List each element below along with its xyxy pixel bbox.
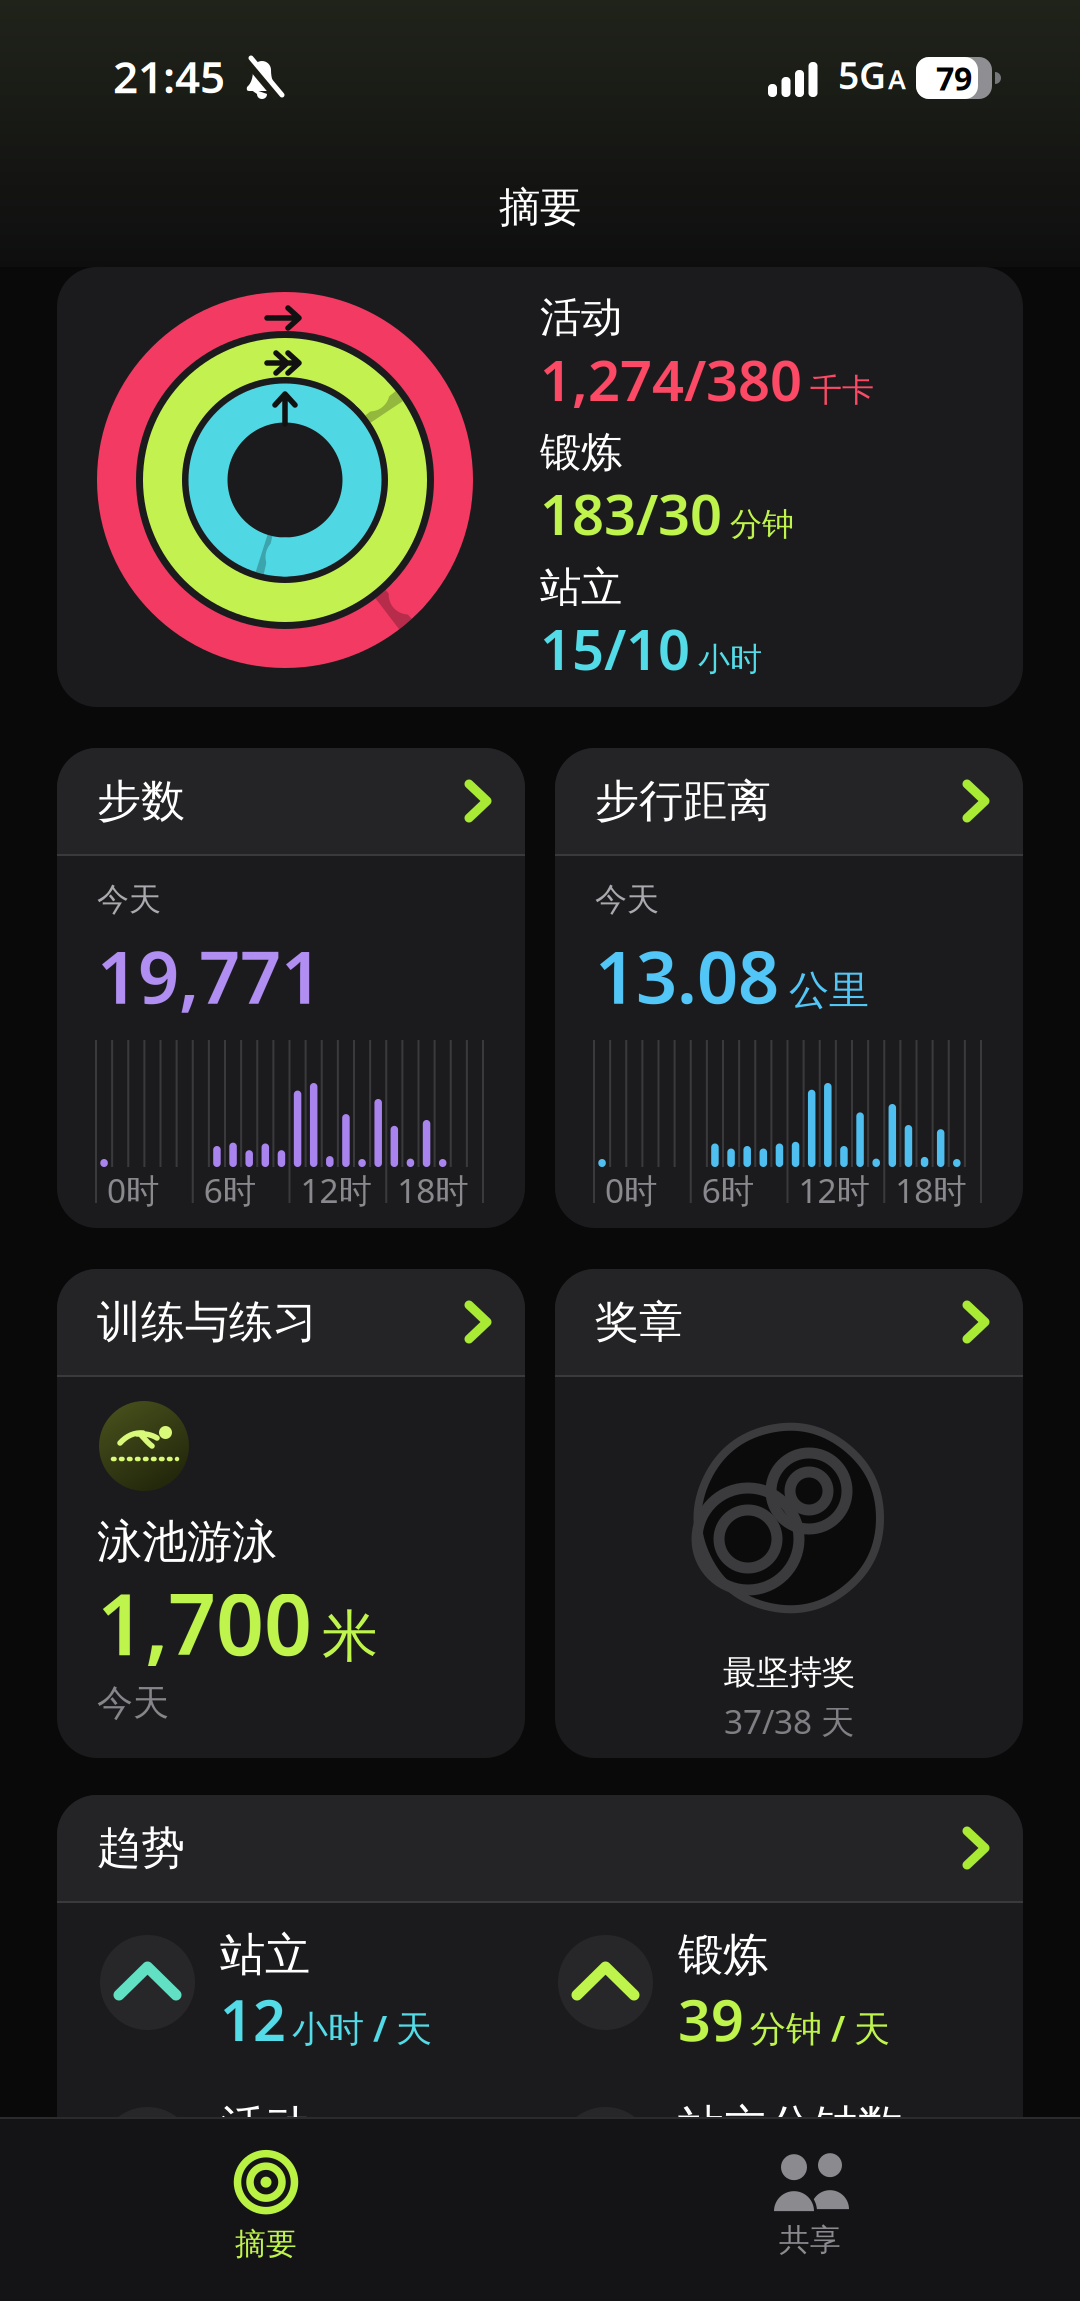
- staticText: 0时: [107, 1168, 159, 1212]
- staticText: 站立分钟数: [678, 2099, 903, 2155]
- staticText: 今天: [595, 880, 659, 919]
- button[interactable]: 趋势: [57, 1795, 1023, 2301]
- staticText: 公里: [789, 966, 869, 1015]
- staticText: 今天: [97, 1681, 169, 1725]
- button[interactable]: 奖章: [555, 1269, 1023, 1758]
- staticText: 站立: [220, 1927, 310, 1983]
- staticText: 最坚持奖: [723, 1652, 855, 1693]
- staticText: 趋势: [97, 1821, 185, 1875]
- button[interactable]: 步行距离: [555, 748, 1023, 1228]
- staticText: 步行距离: [595, 774, 771, 828]
- staticText: 12时: [798, 1168, 869, 1212]
- button[interactable]: 步数: [57, 748, 525, 1228]
- staticText: 79: [936, 57, 972, 99]
- staticText: 奖章: [595, 1295, 683, 1349]
- staticText: 摘要: [499, 182, 581, 233]
- button[interactable]: 共享: [660, 2131, 960, 2281]
- staticText: 站立: [540, 562, 622, 613]
- staticText: 共享: [779, 2221, 841, 2259]
- staticText: 步数: [97, 774, 185, 828]
- staticText: 18时: [397, 1168, 468, 1212]
- staticText: 分钟 / 天: [750, 2004, 890, 2052]
- staticText: 37/38 天: [724, 1699, 854, 1743]
- staticText: 19,771: [97, 928, 322, 1024]
- staticText: 6时: [702, 1168, 754, 1212]
- staticText: 13.08: [595, 928, 779, 1024]
- staticText: 12: [220, 1981, 286, 2057]
- staticText: 今天: [97, 880, 161, 919]
- staticText: 1,700: [97, 1567, 312, 1678]
- staticText: 米: [322, 1602, 378, 1671]
- staticText: 锻炼: [678, 1927, 768, 1983]
- staticText: 千卡: [810, 371, 874, 410]
- staticText: 21:45: [113, 47, 225, 105]
- button[interactable]: 活动: [57, 267, 1023, 707]
- staticText: A: [888, 61, 906, 97]
- staticText: 183/30: [540, 476, 722, 550]
- staticText: 泳池游泳: [97, 1514, 277, 1570]
- staticText: 6时: [204, 1168, 256, 1212]
- staticText: 39: [678, 1981, 744, 2057]
- staticText: 活动: [220, 2099, 310, 2155]
- staticText: 活动: [540, 292, 622, 343]
- staticText: 0时: [605, 1168, 657, 1212]
- staticText: 锻炼: [540, 427, 622, 478]
- staticText: 15/10: [540, 611, 690, 685]
- button[interactable]: 摘要: [116, 2131, 416, 2281]
- staticText: 5G: [838, 50, 886, 100]
- staticText: 小时 / 天: [292, 2004, 432, 2052]
- staticText: 摘要: [235, 2225, 297, 2263]
- staticText: 1,274/380: [540, 342, 802, 416]
- staticText: 小时: [698, 640, 762, 679]
- staticText: 12时: [300, 1168, 371, 1212]
- button[interactable]: 训练与练习: [57, 1269, 525, 1758]
- staticText: 18时: [895, 1168, 966, 1212]
- staticText: 训练与练习: [97, 1295, 317, 1349]
- staticText: 分钟: [730, 505, 794, 544]
